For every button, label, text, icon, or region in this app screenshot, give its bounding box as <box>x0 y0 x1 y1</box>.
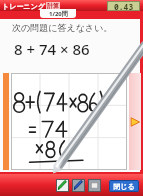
button[interactable]: Blue pen <box>72 179 85 192</box>
staticText: トレーニング <box>2 2 45 11</box>
button[interactable]: Green pen <box>56 179 69 192</box>
staticText: 閉じる <box>113 182 135 191</box>
staticText: 0.43 <box>114 1 134 11</box>
button[interactable]: Eraser <box>88 179 101 192</box>
staticText: 1/20問 <box>49 10 68 18</box>
button[interactable]: Next <box>129 73 141 170</box>
staticText: 計算 <box>47 2 59 10</box>
staticText: 8 + 74 × 86 <box>14 39 90 59</box>
button[interactable]: 閉じる <box>109 180 139 192</box>
staticText: 次の問題に答えなさい。 <box>12 22 113 33</box>
